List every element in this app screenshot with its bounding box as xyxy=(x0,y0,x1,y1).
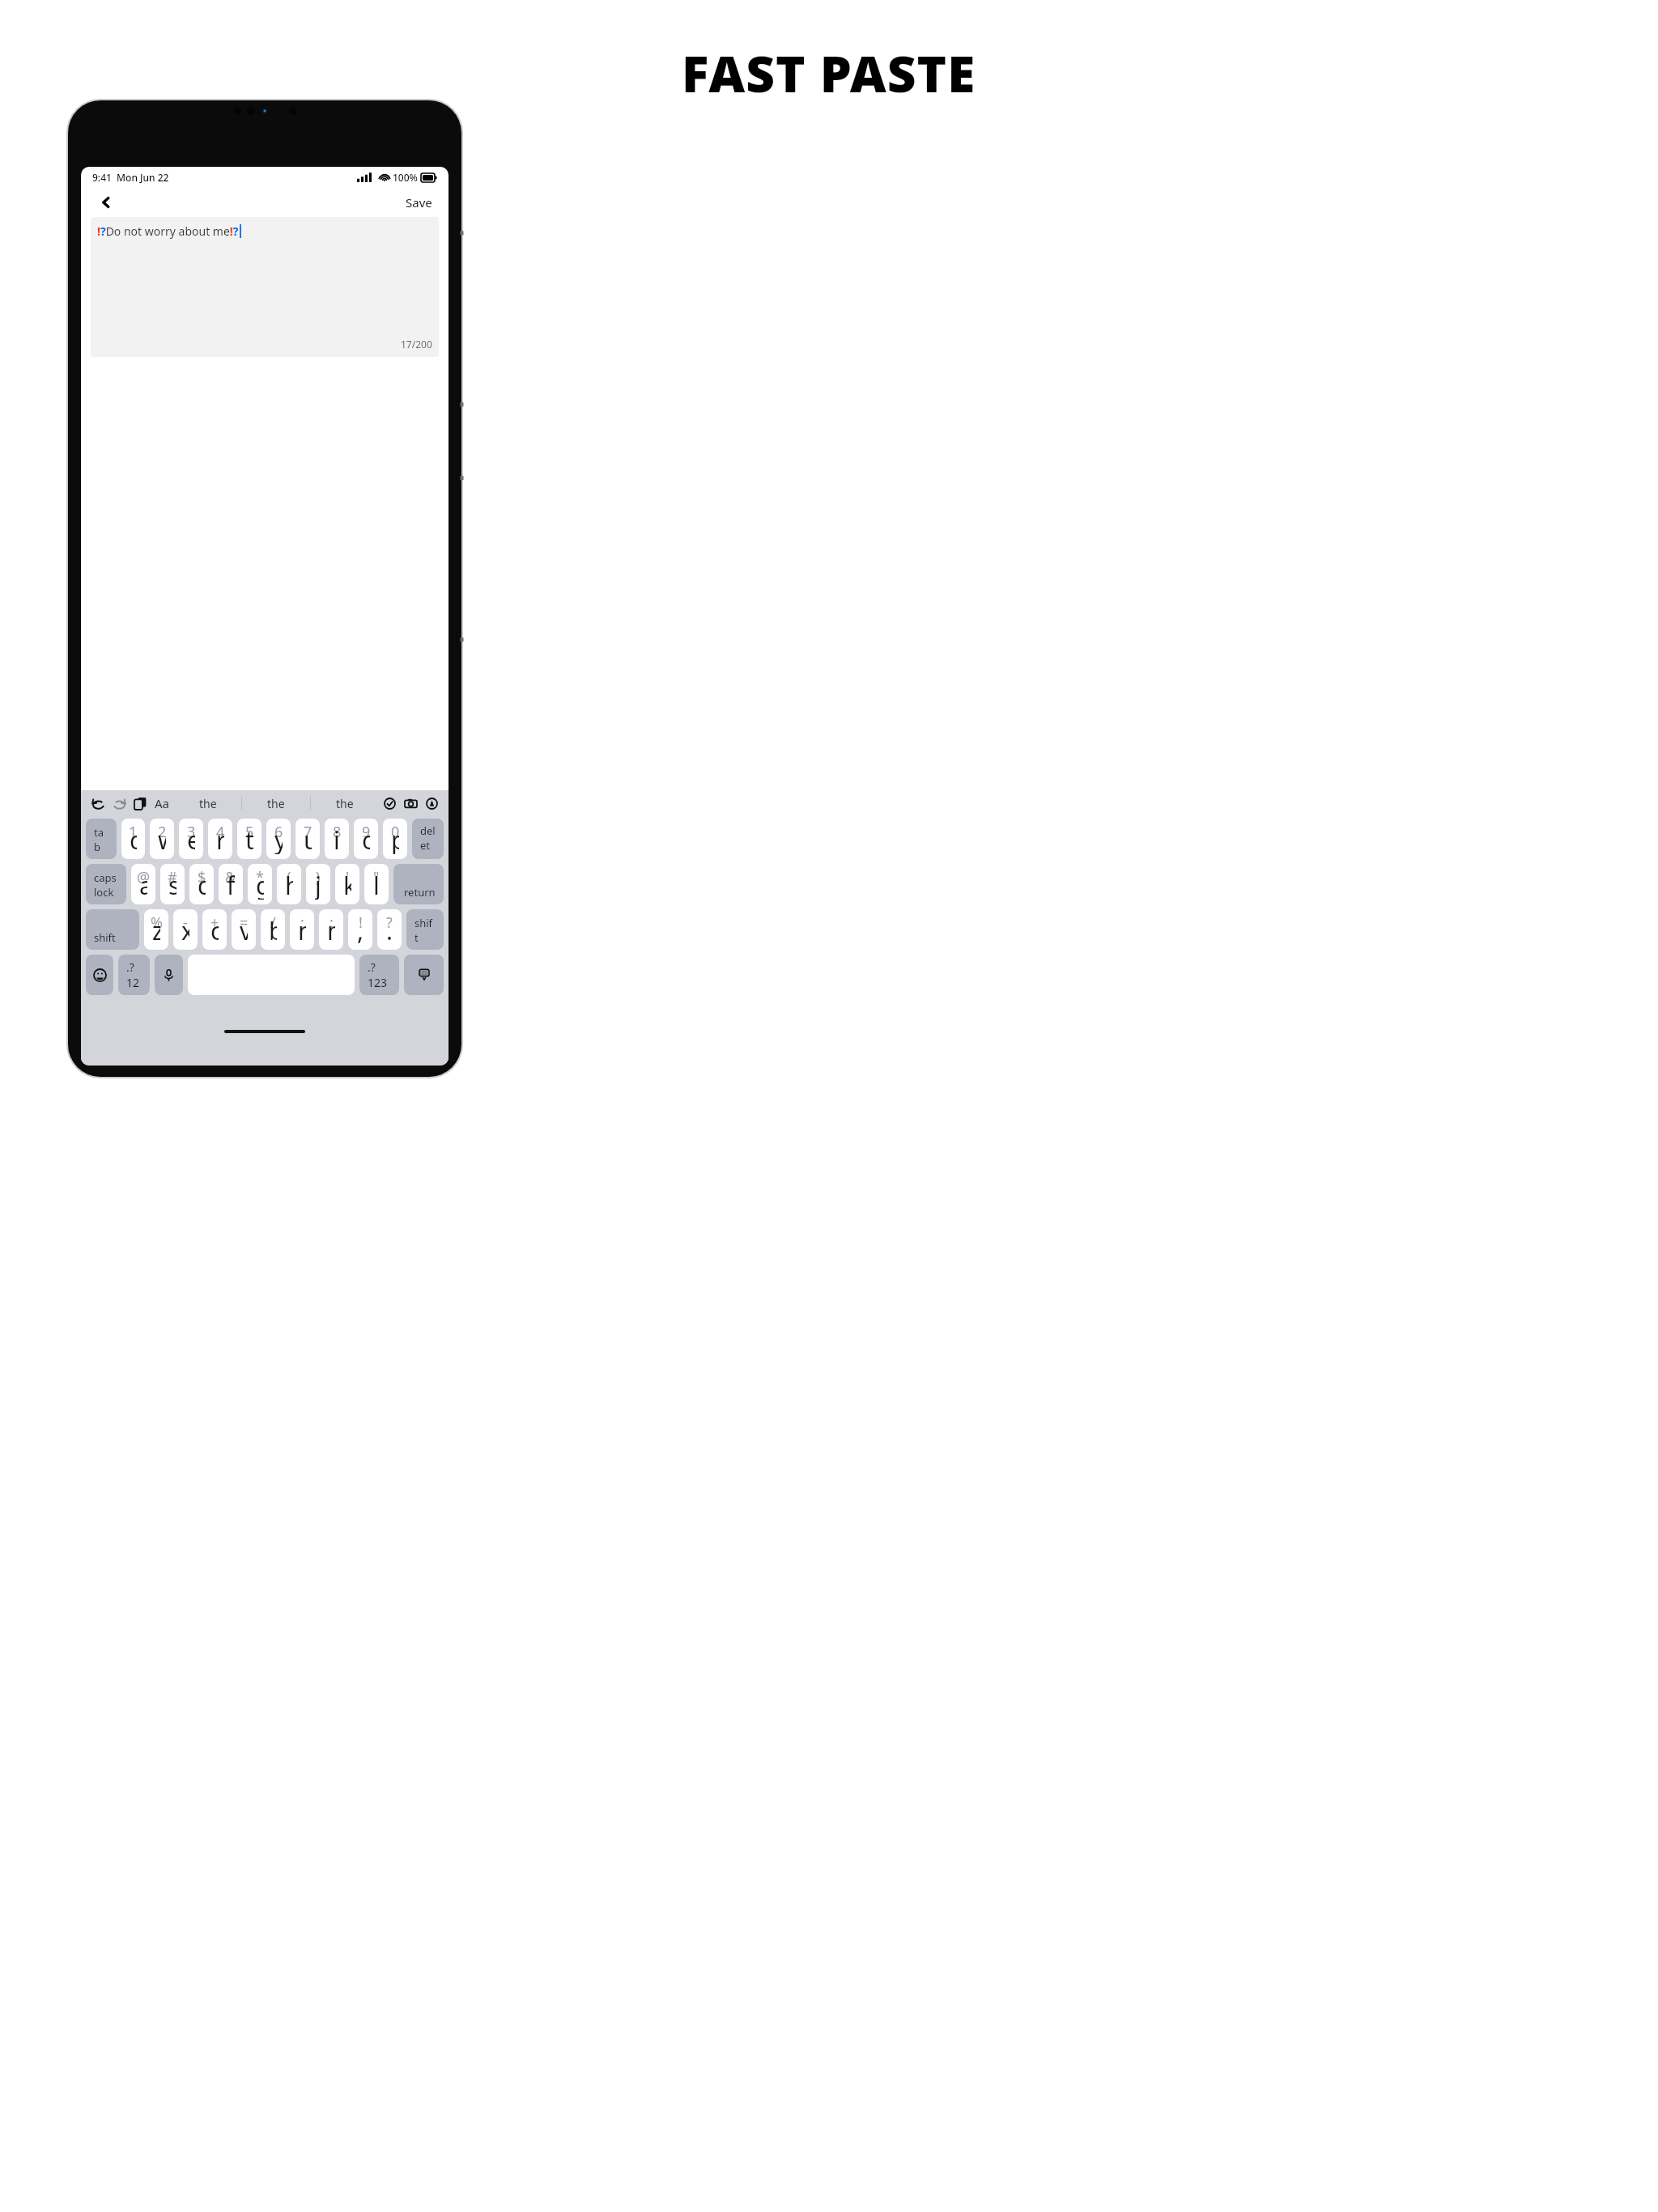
button[interactable]: $ xyxy=(189,864,214,904)
staticText: 9 xyxy=(362,822,371,842)
button[interactable]: % xyxy=(144,909,168,950)
button[interactable]: * xyxy=(248,864,272,904)
button[interactable]: .?123 xyxy=(118,955,150,995)
staticText: ? xyxy=(386,912,393,933)
button[interactable]: ( xyxy=(277,864,301,904)
staticText: f xyxy=(227,869,235,900)
button[interactable]: 2 xyxy=(150,819,174,859)
staticText: h xyxy=(285,869,293,900)
button[interactable]: Camera xyxy=(400,793,421,814)
button[interactable]: 7 xyxy=(295,819,320,859)
button[interactable]: Back xyxy=(92,189,120,216)
staticText: e xyxy=(187,823,195,854)
staticText: delete xyxy=(420,823,436,854)
button[interactable]: shift xyxy=(406,909,444,950)
staticText: !?Do not worry about me!? xyxy=(97,223,239,239)
staticText: the xyxy=(267,796,285,811)
staticText: * xyxy=(256,867,264,887)
button[interactable]: Save xyxy=(401,191,437,214)
button[interactable]: .?123 xyxy=(359,955,399,995)
staticText: & xyxy=(225,867,236,887)
button[interactable]: " xyxy=(364,864,389,904)
button[interactable]: ' xyxy=(335,864,359,904)
button[interactable]: + xyxy=(202,909,227,950)
staticText: o xyxy=(362,823,370,854)
button[interactable] xyxy=(155,955,183,995)
staticText: tab xyxy=(94,825,108,854)
staticText: j xyxy=(315,869,321,900)
button[interactable]: tab xyxy=(86,819,117,859)
staticText: the xyxy=(336,796,354,811)
button[interactable]: ) xyxy=(306,864,330,904)
button[interactable]: shift xyxy=(86,909,139,950)
staticText: # xyxy=(168,867,177,887)
staticText: 2 xyxy=(158,822,167,842)
button[interactable]: !?Do not worry about me!? xyxy=(91,217,439,357)
staticText: q xyxy=(130,823,137,854)
staticText: ! xyxy=(359,912,363,933)
staticText: + xyxy=(210,912,219,933)
button[interactable]: / xyxy=(261,909,285,950)
staticText: a xyxy=(139,869,147,900)
button[interactable]: 4 xyxy=(208,819,232,859)
staticText: caps lock xyxy=(94,870,118,900)
button[interactable]: # xyxy=(160,864,185,904)
staticText: - xyxy=(183,912,188,933)
staticText: 17/200 xyxy=(401,338,432,351)
button[interactable] xyxy=(86,955,113,995)
staticText: 0 xyxy=(391,822,400,842)
button[interactable]: the xyxy=(311,790,379,816)
staticText: : xyxy=(329,912,334,933)
staticText: d xyxy=(198,869,206,900)
staticText: Save xyxy=(406,194,432,211)
button[interactable]: : xyxy=(319,909,343,950)
staticText: t xyxy=(245,823,253,854)
staticText: " xyxy=(373,867,380,887)
button[interactable]: Confirm xyxy=(379,793,400,814)
button[interactable]: 6 xyxy=(266,819,291,859)
staticText: FAST PASTE xyxy=(682,39,976,107)
staticText: y xyxy=(274,823,283,854)
staticText: shift xyxy=(414,916,436,945)
button[interactable]: the xyxy=(174,790,241,816)
staticText: i xyxy=(334,823,340,854)
button[interactable]: Redo xyxy=(108,793,130,814)
button[interactable]: 8 xyxy=(325,819,349,859)
button[interactable]: Aa xyxy=(151,795,174,811)
button[interactable]: - xyxy=(173,909,198,950)
button[interactable]: Markup xyxy=(421,793,442,814)
button[interactable]: 5 xyxy=(237,819,261,859)
staticText: w xyxy=(158,823,166,854)
staticText: the xyxy=(199,796,217,811)
staticText: $ xyxy=(198,867,206,887)
button[interactable]: & xyxy=(219,864,243,904)
staticText: . xyxy=(386,914,393,945)
button[interactable] xyxy=(404,955,444,995)
button[interactable]: = xyxy=(232,909,256,950)
staticText: ' xyxy=(346,867,350,887)
button[interactable]: Paste xyxy=(130,793,151,814)
button[interactable]: return xyxy=(393,864,444,904)
button[interactable]: 1 xyxy=(121,819,145,859)
button[interactable]: ! xyxy=(348,909,372,950)
button[interactable]: 9 xyxy=(354,819,378,859)
staticText: 8 xyxy=(333,822,342,842)
staticText: 6 xyxy=(274,822,283,842)
button[interactable]: 0 xyxy=(383,819,407,859)
staticText: = xyxy=(240,912,249,933)
button[interactable]: the xyxy=(242,790,310,816)
staticText: @ xyxy=(137,867,151,887)
button[interactable]: ; xyxy=(290,909,314,950)
button[interactable]: Undo xyxy=(87,793,108,814)
button[interactable]: caps lock xyxy=(86,864,126,904)
button[interactable]: ? xyxy=(377,909,402,950)
staticText: 100% xyxy=(393,171,418,184)
staticText: k xyxy=(343,869,351,900)
button[interactable]: 3 xyxy=(179,819,203,859)
button[interactable]: delete xyxy=(412,819,444,859)
staticText: s xyxy=(168,869,176,900)
staticText: Aa xyxy=(155,795,170,811)
staticText: return xyxy=(404,885,436,900)
button[interactable]: @ xyxy=(131,864,155,904)
